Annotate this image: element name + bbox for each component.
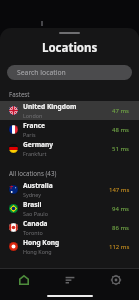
staticText: Sydney: [23, 191, 42, 198]
staticText: 86 ms: [112, 224, 130, 232]
staticText: Frankfurt: [23, 150, 47, 157]
staticText: Australia: [23, 181, 53, 190]
staticText: Brasil: [23, 200, 42, 209]
button[interactable]: Hong Kong: [0, 237, 139, 256]
staticText: 94 ms: [112, 205, 130, 213]
staticText: All locations (43): [9, 169, 57, 177]
staticText: Hong Kong: [23, 248, 52, 255]
staticText: 147 ms: [109, 186, 130, 194]
staticText: Fastest: [9, 90, 30, 98]
staticText: France: [23, 121, 46, 130]
staticText: Locations: [42, 40, 98, 56]
button[interactable]: Locations list: [47, 269, 93, 291]
button[interactable]: Australia: [0, 180, 139, 199]
button[interactable]: United Kingdom: [0, 101, 139, 120]
staticText: Canada: [23, 219, 48, 228]
staticText: 47 ms: [112, 107, 130, 115]
staticText: 112 ms: [109, 243, 130, 251]
button[interactable]: Canada: [0, 218, 139, 237]
staticText: Toronto: [23, 229, 43, 236]
staticText: Paris: [23, 131, 36, 138]
staticText: 48 ms: [112, 126, 130, 134]
button[interactable]: Home: [0, 269, 47, 291]
button[interactable]: Germany: [0, 139, 139, 158]
button[interactable]: Settings: [93, 269, 139, 291]
staticText: Sao Paulo: [23, 210, 48, 217]
button[interactable]: France: [0, 120, 139, 139]
staticText: United Kingdom: [23, 102, 77, 111]
staticText: 51 ms: [112, 145, 130, 153]
staticText: Germany: [23, 140, 54, 149]
staticText: Hong Kong: [23, 238, 60, 247]
staticText: London: [23, 112, 43, 119]
button[interactable]: Search location: [7, 65, 132, 80]
staticText: Search location: [17, 68, 66, 77]
button[interactable]: Brasil: [0, 199, 139, 218]
